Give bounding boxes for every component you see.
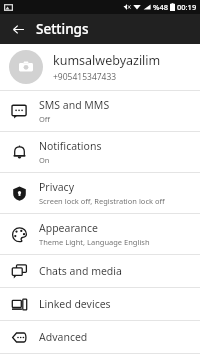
button[interactable]: SMS and MMS <box>0 91 200 131</box>
staticText: Chats and media <box>39 264 122 278</box>
staticText: Settings <box>36 20 89 38</box>
staticText: Off <box>39 114 51 124</box>
staticText: Advanced <box>39 330 88 344</box>
button[interactable]: Advanced <box>0 321 200 353</box>
button[interactable]: Appearance <box>0 214 200 254</box>
staticText: %48 <box>153 2 168 12</box>
staticText: On <box>39 155 50 165</box>
staticText: Privacy <box>39 180 75 194</box>
staticText: Notifications <box>39 139 102 153</box>
button[interactable]: Back <box>6 17 30 41</box>
button[interactable]: kumsalwebyazilim <box>0 44 200 90</box>
button[interactable]: Chats and media <box>0 255 200 287</box>
button[interactable]: Linked devices <box>0 288 200 320</box>
staticText: Screen lock off, Registration lock off <box>39 196 165 206</box>
staticText: kumsalwebyazilim <box>53 52 161 69</box>
staticText: +905415347433 <box>53 71 117 83</box>
staticText: SMS and MMS <box>39 98 110 112</box>
button[interactable]: Notifications <box>0 132 200 172</box>
staticText: Theme Light, Language English <box>39 237 150 247</box>
staticText: 00:19 <box>177 2 197 12</box>
button[interactable]: Privacy <box>0 173 200 213</box>
staticText: Appearance <box>39 221 98 235</box>
staticText: Linked devices <box>39 297 111 311</box>
